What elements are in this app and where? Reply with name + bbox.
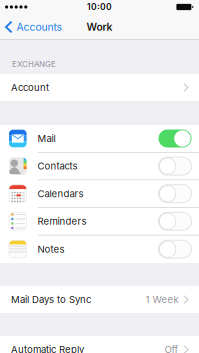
staticText: Mail: [38, 133, 56, 144]
button[interactable]: Automatic Reply: [0, 336, 199, 353]
staticText: Mail Days to Sync: [11, 294, 91, 305]
button[interactable]: Account: [0, 74, 199, 101]
staticText: Calendars: [38, 188, 84, 199]
staticText: Off: [165, 344, 179, 353]
staticText: Notes: [38, 243, 65, 255]
button[interactable]: Notes: [0, 235, 199, 263]
staticText: Accounts: [17, 21, 62, 33]
staticText: 1 Week: [146, 294, 179, 305]
staticText: EXCHANGE: [12, 59, 56, 69]
staticText: Account: [11, 82, 49, 93]
button[interactable]: Calendars: [0, 180, 199, 207]
staticText: Contacts: [38, 160, 78, 172]
button[interactable]: Mail Days to Sync: [0, 286, 199, 313]
button[interactable]: Accounts: [0, 14, 68, 40]
staticText: 10:00: [87, 2, 112, 12]
staticText: Reminders: [38, 215, 87, 227]
staticText: Work: [86, 21, 112, 33]
staticText: Automatic Reply: [11, 344, 84, 353]
button[interactable]: Mail: [0, 125, 199, 152]
button[interactable]: Contacts: [0, 153, 199, 180]
button[interactable]: Reminders: [0, 208, 199, 235]
